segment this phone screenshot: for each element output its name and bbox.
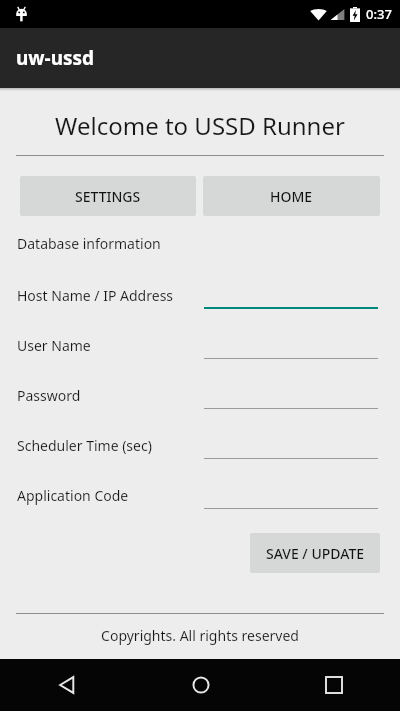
staticText: HOME [270,187,313,206]
staticText: Database information [17,234,161,253]
button[interactable]: Password [0,376,400,426]
button[interactable]: SAVE / UPDATE [250,533,380,573]
staticText: User Name [17,336,91,355]
staticText: Copyrights. All rights reserved [0,626,400,645]
staticText: Password [17,386,81,405]
staticText: Application Code [17,486,129,505]
button[interactable]: HOME [203,176,380,216]
staticText: SETTINGS [75,187,141,206]
button[interactable]: Recent apps [267,659,400,711]
staticText: uw-ussd [16,45,95,71]
button[interactable]: Host Name / IP Address [0,276,400,326]
button[interactable]: Back [0,659,134,711]
staticText: SAVE / UPDATE [266,544,365,563]
staticText: Host Name / IP Address [17,286,174,305]
button[interactable]: Application Code [0,476,400,526]
button[interactable]: Home [134,659,267,711]
staticText: Welcome to USSD Runner [0,109,400,142]
staticText: 0:37 [366,5,392,23]
button[interactable]: SETTINGS [20,176,196,216]
button[interactable]: User Name [0,326,400,376]
staticText: Scheduler Time (sec) [17,436,152,455]
button[interactable]: Scheduler Time (sec) [0,426,400,476]
